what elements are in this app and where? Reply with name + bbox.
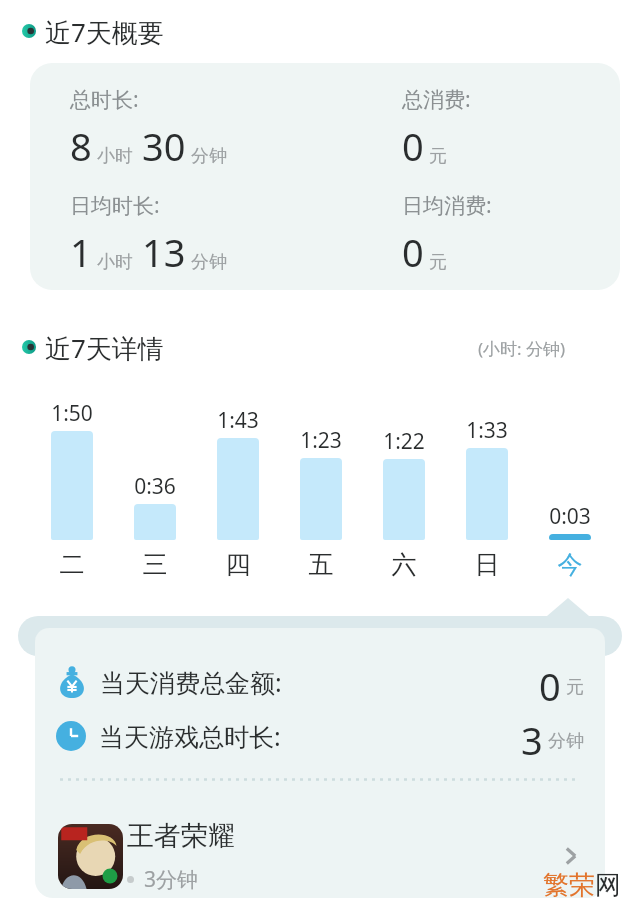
staticText: 二 <box>37 549 107 580</box>
staticText: 当天消费总金额: <box>100 665 282 699</box>
other: 消费图标 <box>56 666 88 698</box>
staticText: 1 <box>70 226 92 278</box>
staticText: 日均时长: <box>70 191 160 220</box>
staticText: 网 <box>595 869 621 902</box>
staticText: (小时: 分钟) <box>478 337 566 360</box>
button[interactable]: 近7天概要 <box>22 14 164 48</box>
staticText: 日均消费: <box>402 191 492 220</box>
staticText: 五 <box>286 549 356 580</box>
staticText: 分钟 <box>548 730 584 753</box>
button[interactable]: 四 <box>203 549 273 580</box>
button[interactable]: 六 <box>369 549 439 580</box>
staticText: 近7天概要 <box>45 14 164 48</box>
other: 查看详情 <box>556 841 586 871</box>
staticText: 总消费: <box>402 85 471 114</box>
button[interactable]: 近7天详情 <box>22 330 164 364</box>
staticText: 8 <box>70 120 92 172</box>
staticText: 元 <box>429 145 447 168</box>
button[interactable]: 消费图标 <box>56 660 584 704</box>
staticText: 13 <box>142 226 186 278</box>
staticText: 1:22 <box>369 427 439 456</box>
button[interactable]: 五 <box>286 549 356 580</box>
button[interactable]: 日 <box>452 549 522 580</box>
staticText: 小时 <box>97 145 133 168</box>
button[interactable]: 今 <box>535 549 605 580</box>
staticText: 三 <box>120 549 190 580</box>
staticText: 总时长: <box>70 85 139 114</box>
staticText: 分钟 <box>191 145 227 168</box>
staticText: 日 <box>452 549 522 580</box>
staticText: 当天游戏总时长: <box>99 719 281 753</box>
staticText: 王者荣耀 <box>127 819 235 853</box>
button[interactable]: 总时长: <box>30 63 620 290</box>
staticText: 0 <box>402 226 424 278</box>
staticText: 小时 <box>97 251 133 274</box>
staticText: 30 <box>142 120 186 172</box>
button[interactable]: 二 <box>37 549 107 580</box>
other: 时长图标 <box>56 721 86 751</box>
staticText: 3 <box>521 714 543 758</box>
button[interactable]: 时长图标 <box>56 714 584 758</box>
staticText: 1:50 <box>37 399 107 428</box>
staticText: 0:36 <box>120 472 190 501</box>
button[interactable] <box>134 504 176 540</box>
staticText: 元 <box>566 676 584 699</box>
staticText: 六 <box>369 549 439 580</box>
staticText: 元 <box>429 251 447 274</box>
staticText: 近7天详情 <box>45 330 164 364</box>
button[interactable] <box>549 534 591 540</box>
staticText: 繁荣 <box>543 869 595 902</box>
staticText: 四 <box>203 549 273 580</box>
staticText: 0 <box>539 660 561 704</box>
staticText: 1:23 <box>286 426 356 455</box>
staticText: 0:03 <box>535 502 605 531</box>
button[interactable]: 王者荣耀 <box>40 810 600 902</box>
staticText: 1:33 <box>452 416 522 445</box>
button[interactable]: 三 <box>120 549 190 580</box>
staticText: 1:43 <box>203 406 273 435</box>
staticText: 今 <box>535 549 605 580</box>
staticText: 3分钟 <box>144 865 199 894</box>
staticText: 0 <box>402 120 424 172</box>
staticText: 分钟 <box>191 251 227 274</box>
